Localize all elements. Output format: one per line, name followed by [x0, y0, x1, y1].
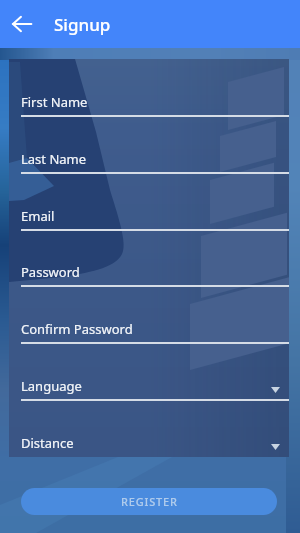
button[interactable]: Last Name [9, 148, 289, 180]
button[interactable]: Back [0, 2, 44, 46]
button[interactable]: Email [9, 205, 289, 237]
button[interactable]: Confirm Password [9, 318, 289, 350]
staticText: Signup [54, 13, 111, 36]
staticText: Last Name [21, 150, 87, 168]
staticText: Distance [21, 434, 74, 452]
button[interactable]: Language [9, 375, 289, 407]
staticText: Password [21, 263, 80, 281]
button[interactable]: REGISTER [21, 488, 277, 515]
staticText: Language [21, 377, 82, 395]
button[interactable]: Distance [9, 432, 289, 455]
staticText: Email [21, 207, 55, 225]
button[interactable]: Password [9, 261, 289, 293]
button[interactable]: First Name [9, 91, 289, 123]
staticText: First Name [21, 93, 88, 111]
staticText: REGISTER [121, 494, 178, 509]
staticText: Confirm Password [21, 320, 133, 338]
